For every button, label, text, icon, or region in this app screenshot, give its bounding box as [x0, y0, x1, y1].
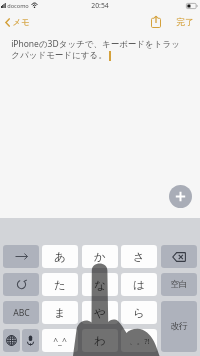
button[interactable]: は — [121, 273, 157, 296]
staticText: docomo — [7, 2, 29, 10]
button[interactable]: な — [82, 273, 118, 296]
button[interactable]: メモ — [0, 13, 38, 32]
button[interactable]: か — [82, 245, 118, 268]
staticText: は — [133, 278, 145, 292]
button[interactable]: 完了 — [172, 13, 198, 32]
button[interactable]: た — [42, 273, 78, 296]
staticText: か — [94, 250, 106, 264]
staticText: た — [54, 278, 66, 292]
button[interactable]: ま — [42, 301, 78, 324]
button[interactable]: Next candidate — [3, 245, 39, 268]
button[interactable]: Undo — [3, 273, 39, 296]
button[interactable]: Delete — [161, 245, 197, 268]
button[interactable]: Share — [148, 14, 167, 32]
staticText: 、。?! — [129, 336, 150, 346]
staticText: わ — [94, 334, 106, 348]
staticText: ま — [54, 306, 66, 320]
button[interactable]: 、。?! — [121, 329, 157, 352]
staticText: 完了 — [176, 17, 194, 28]
staticText: ^_^ — [53, 335, 67, 347]
staticText: ら — [133, 306, 145, 320]
button[interactable]: 空白 — [161, 273, 197, 296]
button[interactable]: ABC — [3, 301, 39, 324]
button[interactable]: Switch keyboard — [3, 329, 20, 352]
button[interactable]: わ — [82, 329, 118, 352]
staticText: 空白 — [170, 279, 188, 290]
button[interactable]: Add attachment — [169, 185, 192, 208]
button[interactable]: あ — [42, 245, 78, 268]
staticText: iPhoneの3Dタッチで、キーボードをトラッ — [11, 38, 180, 50]
button[interactable]: や — [82, 301, 118, 324]
staticText: メモ — [12, 17, 30, 28]
button[interactable]: ^_^ — [42, 329, 78, 352]
button[interactable]: さ — [121, 245, 157, 268]
button[interactable]: ら — [121, 301, 157, 324]
staticText: 20:54 — [91, 1, 109, 10]
staticText: 改行 — [170, 321, 188, 332]
staticText: さ — [133, 250, 145, 264]
button[interactable]: 改行 — [161, 301, 197, 352]
staticText: あ — [54, 250, 66, 264]
staticText: クパッドモードにする。 — [11, 50, 107, 61]
button[interactable]: Voice input — [22, 329, 39, 352]
staticText: な — [94, 278, 106, 292]
staticText: や — [94, 306, 106, 320]
staticText: ABC — [13, 307, 30, 319]
